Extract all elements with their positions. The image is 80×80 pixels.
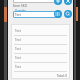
staticText: Text: [15, 13, 21, 17]
staticText: Text: [15, 56, 21, 60]
button[interactable]: Text: [11, 54, 70, 62]
staticText: Text: [15, 65, 21, 69]
button[interactable]: Clear row: [64, 0, 72, 5]
staticText: Text: [15, 29, 21, 33]
button[interactable]: Add row: [54, 0, 62, 5]
button[interactable]: Text: [11, 45, 70, 53]
button[interactable]: Scan barcode: [54, 10, 62, 18]
staticText: Item SKU: [13, 4, 28, 8]
button[interactable]: Text: [11, 36, 70, 44]
staticText: Text: [15, 47, 21, 51]
staticText: Total: 0: [56, 74, 67, 78]
button[interactable]: Search item: [64, 10, 72, 18]
button[interactable]: [13, 0, 61, 3]
staticText: Text: [15, 38, 21, 42]
button[interactable]: Text: [13, 11, 61, 18]
button[interactable]: Text: [11, 27, 70, 35]
staticText: Quantity: [15, 9, 26, 13]
button[interactable]: Text: [11, 63, 70, 71]
